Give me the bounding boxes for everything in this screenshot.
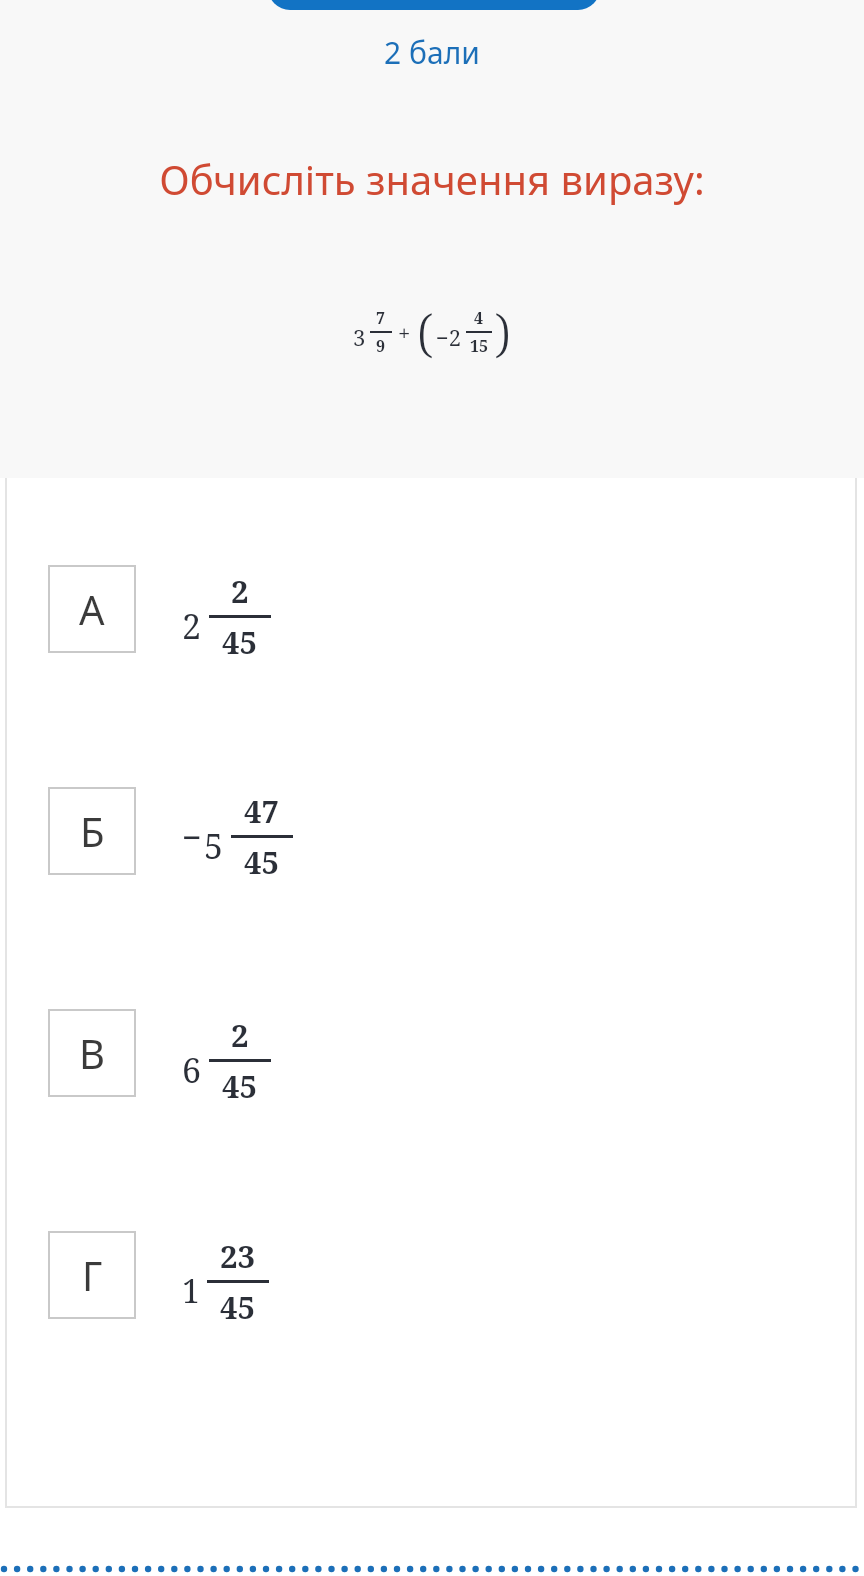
- staticText: 4: [474, 307, 484, 329]
- staticText: Г: [82, 1248, 103, 1302]
- staticText: +: [398, 317, 411, 347]
- staticText: А: [79, 582, 105, 636]
- staticText: Обчисліть значення виразу:: [0, 152, 864, 206]
- staticText: 2: [182, 603, 202, 649]
- staticText: 1: [182, 1269, 200, 1313]
- staticText: ): [494, 296, 511, 367]
- button[interactable]: Б: [0, 478, 864, 571]
- button[interactable]: Question action: [268, 0, 600, 10]
- staticText: −2: [436, 322, 462, 352]
- staticText: 15: [470, 335, 489, 357]
- staticText: 2 бали: [0, 32, 864, 73]
- staticText: 45: [244, 841, 280, 883]
- staticText: 2: [231, 1014, 249, 1056]
- staticText: 2: [231, 570, 249, 612]
- staticText: 23: [220, 1235, 256, 1277]
- staticText: 9: [376, 335, 386, 357]
- staticText: 45: [220, 1286, 256, 1328]
- button[interactable]: В: [0, 478, 864, 571]
- staticText: 6: [182, 1047, 202, 1093]
- button[interactable]: А: [0, 478, 864, 571]
- staticText: 7: [376, 307, 386, 329]
- staticText: В: [79, 1026, 105, 1080]
- staticText: 45: [222, 1065, 258, 1107]
- button[interactable]: Г: [0, 478, 864, 571]
- staticText: 45: [222, 621, 258, 663]
- staticText: 5: [204, 823, 224, 869]
- staticText: 47: [244, 790, 280, 832]
- staticText: −: [182, 814, 202, 860]
- staticText: Б: [80, 804, 105, 858]
- staticText: 3: [353, 322, 366, 352]
- staticText: (: [417, 296, 434, 367]
